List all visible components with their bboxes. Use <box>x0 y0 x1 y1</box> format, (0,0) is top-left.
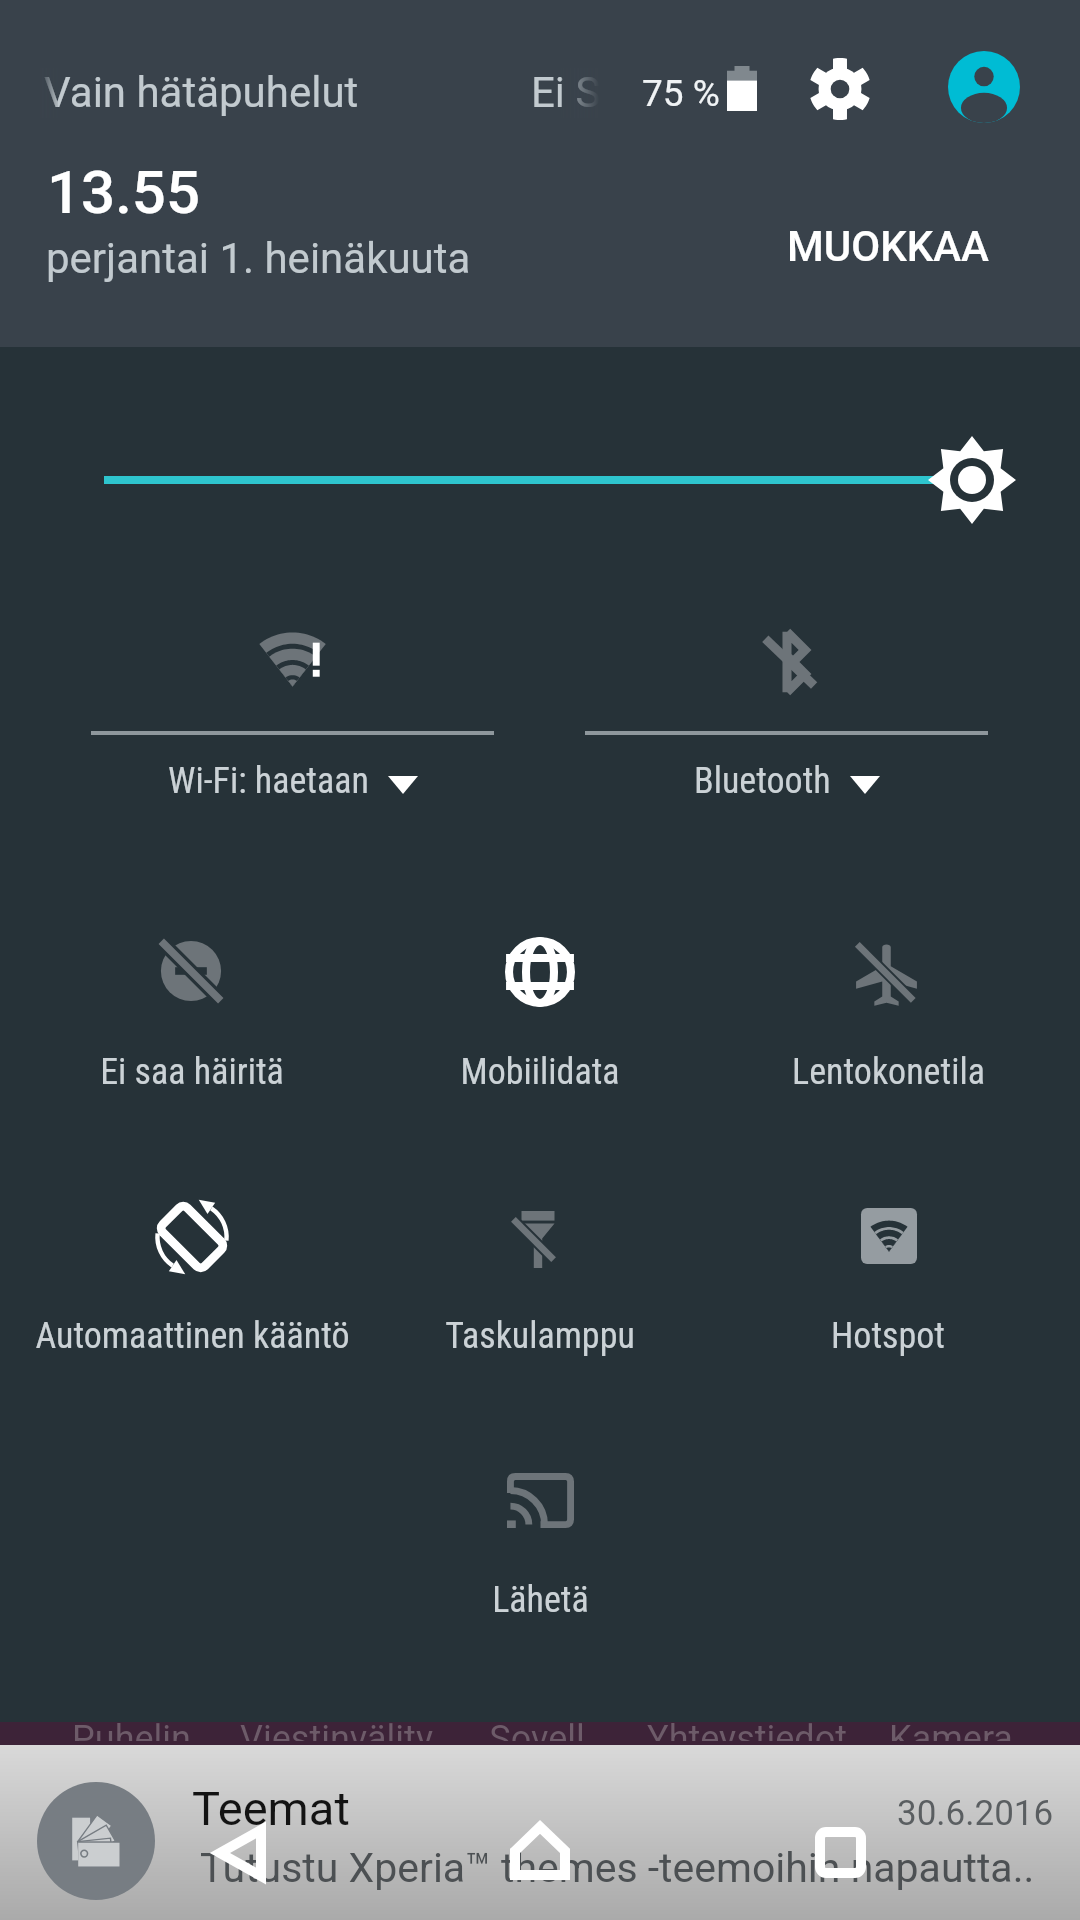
button[interactable]: Bluetooth <box>585 592 988 731</box>
staticText: Wi-Fi: haetaan <box>168 760 369 802</box>
staticText: Automaattinen kääntö <box>35 1315 350 1357</box>
staticText: Sovell <box>489 1722 585 1741</box>
staticText: Vain hätäpuhelut <box>44 68 359 117</box>
button[interactable] <box>420 882 660 1062</box>
button[interactable]: Brightness <box>0 410 1080 550</box>
staticText: MUOKKAA <box>787 222 989 271</box>
staticText: Lähetä <box>492 1579 589 1621</box>
staticText: Mobiilidata <box>460 1051 620 1093</box>
staticText: Ei S <box>531 68 601 117</box>
staticText: Tutustu Xperia™ themes -teemoihin napaut… <box>200 1844 1035 1892</box>
button[interactable]: Settings <box>800 49 880 129</box>
button[interactable]: Wi-Fi: haetaan <box>91 592 494 731</box>
button[interactable] <box>71 881 311 1061</box>
staticText: Ei saa häiritä <box>100 1051 284 1093</box>
staticText: Teemat <box>192 1781 350 1836</box>
button[interactable]: Back <box>195 1808 285 1898</box>
staticText: perjantai 1. heinäkuuta <box>46 234 471 283</box>
staticText: 13.55 <box>47 157 201 227</box>
button[interactable] <box>769 1146 1009 1326</box>
staticText: 75 % <box>642 72 720 115</box>
staticText: Viestinvälity <box>240 1722 433 1741</box>
staticText: Yhteystiedot <box>647 1722 847 1741</box>
button[interactable]: Bluetooth <box>585 760 988 826</box>
staticText: Kamera <box>889 1722 1013 1741</box>
staticText: 30.6.2016 <box>897 1793 1054 1834</box>
staticText: Lentokonetila <box>792 1051 985 1093</box>
button[interactable]: MUOKKAA <box>787 222 989 271</box>
button[interactable] <box>766 883 1006 1063</box>
button[interactable] <box>418 1148 658 1328</box>
staticText: Bluetooth <box>694 760 831 802</box>
button[interactable] <box>72 1147 312 1327</box>
button[interactable]: Wi-Fi: haetaan <box>91 760 494 826</box>
button[interactable]: Recent apps <box>795 1807 885 1897</box>
staticText: Hotspot <box>831 1315 945 1357</box>
button[interactable]: User profile <box>946 49 1022 125</box>
staticText: Taskulamppu <box>445 1315 635 1357</box>
button[interactable]: Teemat <box>0 1745 1080 1920</box>
button[interactable] <box>420 1410 660 1590</box>
staticText: Puhelin <box>72 1722 191 1741</box>
button[interactable]: Home <box>495 1806 585 1896</box>
